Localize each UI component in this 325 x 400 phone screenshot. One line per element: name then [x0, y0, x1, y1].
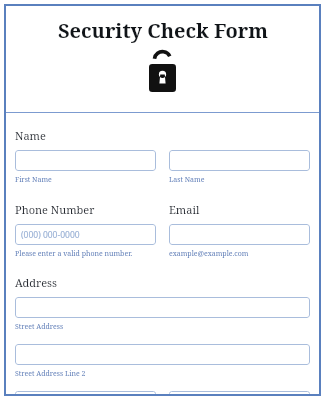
staticText: Name: [15, 128, 46, 143]
staticText: Address: [15, 275, 58, 290]
staticText: Please enter a valid phone number.: [15, 249, 133, 259]
staticText: First Name: [15, 175, 52, 185]
button[interactable]: Street Address Line 2: [15, 344, 310, 365]
button[interactable]: Last Name: [169, 150, 310, 171]
button[interactable]: City: [15, 391, 156, 396]
button[interactable]: Street Address: [15, 297, 310, 318]
button[interactable]: Phone Number: [15, 224, 156, 245]
button[interactable]: First Name: [15, 150, 156, 171]
button[interactable]: State: [169, 391, 310, 396]
staticText: Last Name: [169, 175, 205, 185]
staticText: Email: [169, 202, 200, 217]
staticText: Security Check Form: [58, 17, 268, 44]
staticText: example@example.com: [169, 249, 249, 259]
staticText: Street Address: [15, 322, 64, 332]
staticText: Street Address Line 2: [15, 369, 86, 379]
button[interactable]: Email: [169, 224, 310, 245]
staticText: Phone Number: [15, 202, 95, 217]
staticText: (000) 000-0000: [21, 229, 80, 241]
